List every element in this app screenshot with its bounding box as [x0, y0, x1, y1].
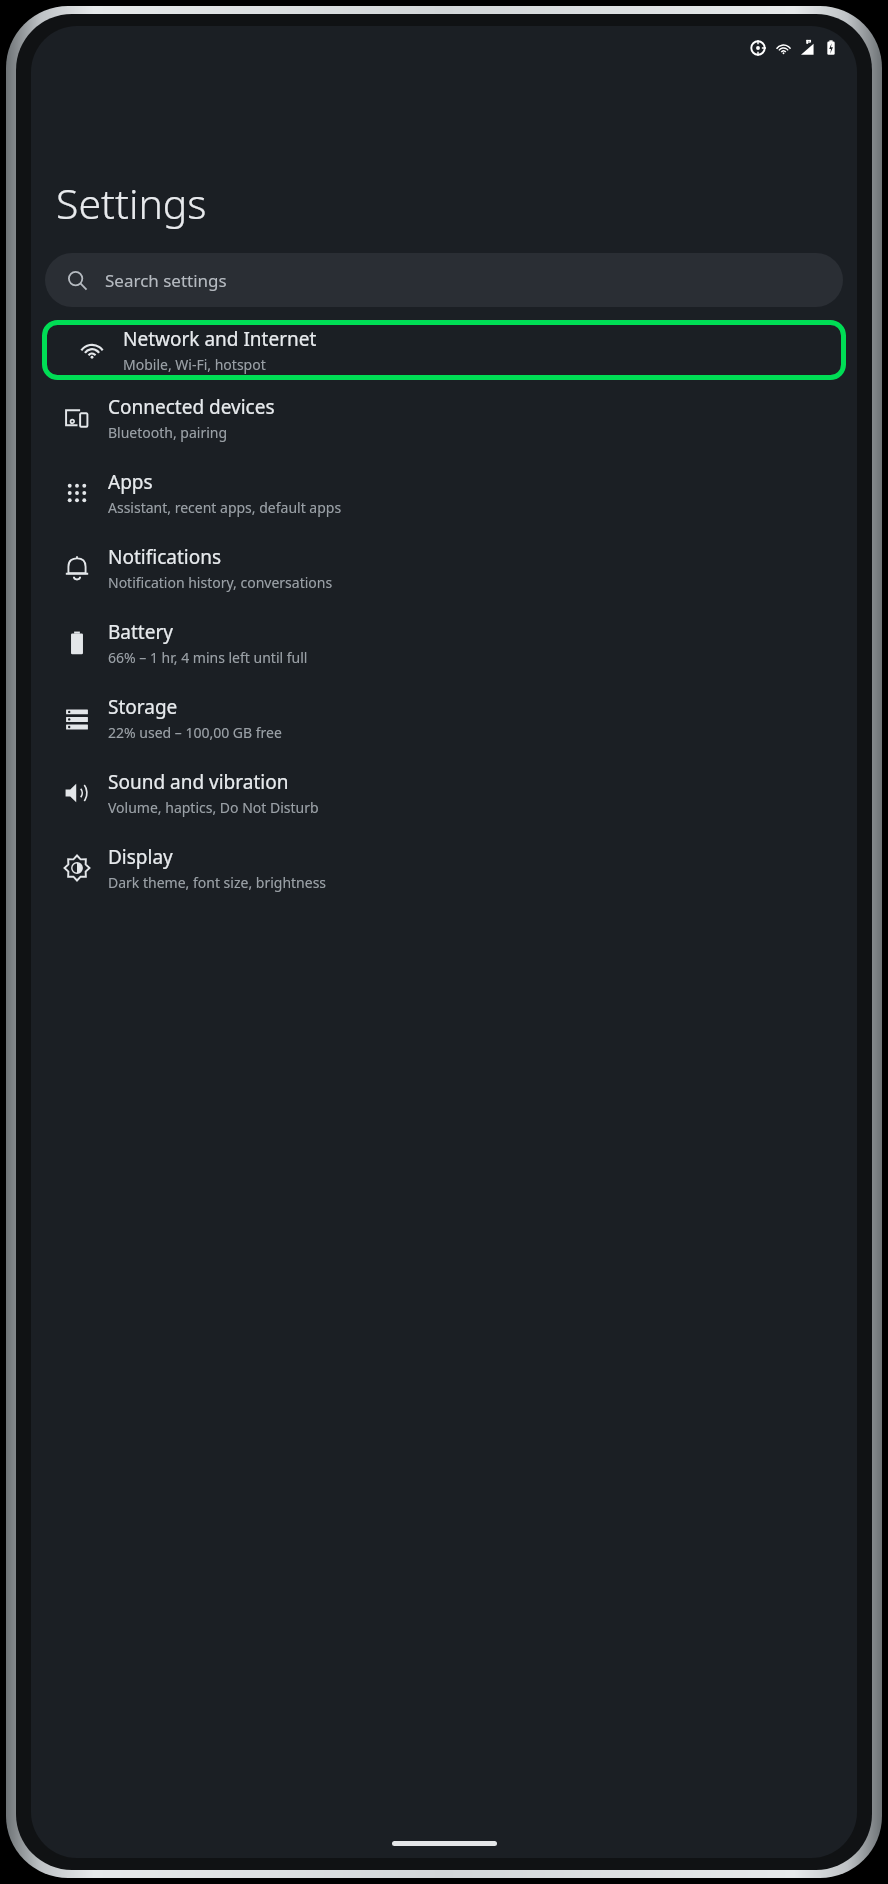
- staticText: Volume, haptics, Do Not Disturb: [108, 798, 319, 817]
- staticText: 66% – 1 hr, 4 mins left until full: [108, 648, 308, 667]
- staticText: Notifications: [108, 544, 222, 570]
- staticText: Apps: [108, 469, 153, 495]
- button[interactable]: Network and Internet: [42, 320, 846, 380]
- staticText: Connected devices: [108, 394, 275, 420]
- staticText: Bluetooth, pairing: [108, 423, 228, 442]
- button[interactable]: Connected devices: [31, 380, 857, 455]
- staticText: 22% used – 100,00 GB free: [108, 723, 282, 742]
- staticText: Battery: [108, 619, 173, 645]
- staticText: Network and Internet: [123, 326, 317, 352]
- staticText: Display: [108, 844, 173, 870]
- staticText: Storage: [108, 694, 178, 720]
- button[interactable]: Storage: [31, 680, 857, 755]
- button[interactable]: Apps: [31, 455, 857, 530]
- staticText: Dark theme, font size, brightness: [108, 873, 327, 892]
- button[interactable]: Search settings: [45, 253, 843, 307]
- staticText: Assistant, recent apps, default apps: [108, 498, 342, 517]
- staticText: Notification history, conversations: [108, 573, 333, 592]
- staticText: Mobile, Wi-Fi, hotspot: [123, 355, 266, 374]
- staticText: Settings: [56, 175, 207, 231]
- button[interactable]: Battery: [31, 605, 857, 680]
- button[interactable]: Sound and vibration: [31, 755, 857, 830]
- button[interactable]: Notifications: [31, 530, 857, 605]
- staticText: Search settings: [105, 269, 227, 292]
- staticText: Sound and vibration: [108, 769, 289, 795]
- button[interactable]: Display: [31, 830, 857, 905]
